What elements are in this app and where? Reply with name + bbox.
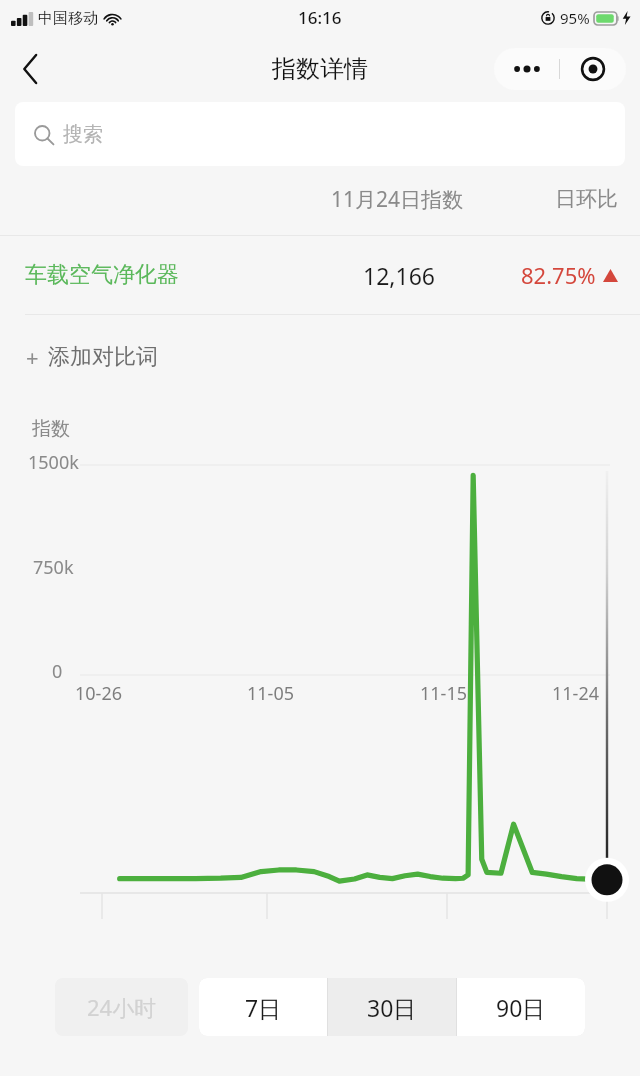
staticText: 车载空气净化器 <box>25 261 308 289</box>
staticText: 11-15 <box>420 681 467 706</box>
button[interactable]: 24小时 <box>55 978 188 1036</box>
staticText: 11-05 <box>247 681 294 706</box>
button[interactable]: 7日 <box>199 978 327 1036</box>
staticText: 11月24日指数 <box>302 185 492 214</box>
staticText: 指数详情 <box>272 54 368 84</box>
staticText: 82.75% <box>521 260 596 290</box>
staticText: 0 <box>52 659 63 684</box>
button[interactable]: 30日 <box>328 978 456 1036</box>
button[interactable]: 车载空气净化器 <box>0 236 640 314</box>
staticText: 添加对比词 <box>48 343 158 371</box>
staticText: 30日 <box>367 992 417 1023</box>
staticText: 24小时 <box>87 992 157 1022</box>
staticText: + <box>26 342 39 372</box>
staticText: 搜索 <box>63 122 103 147</box>
staticText: 750k <box>33 555 74 580</box>
button[interactable]: + <box>0 315 640 399</box>
staticText: 日环比 <box>492 186 618 212</box>
staticText: 7日 <box>245 992 282 1023</box>
button[interactable]: 搜索 <box>15 102 625 166</box>
staticText: 10-26 <box>75 681 122 706</box>
staticText: 11-24 <box>552 681 599 706</box>
staticText: 12,166 <box>308 260 490 291</box>
staticText: 中国移动 <box>38 9 98 28</box>
button[interactable]: More <box>494 48 559 90</box>
button[interactable]: 90日 <box>457 978 585 1036</box>
staticText: 95% <box>560 8 590 28</box>
staticText: 90日 <box>496 992 546 1023</box>
button[interactable]: Target <box>560 48 626 90</box>
staticText: 指数 <box>32 417 70 441</box>
staticText: 16:16 <box>298 6 342 29</box>
staticText: 1500k <box>28 450 79 475</box>
button[interactable]: Back <box>6 44 56 94</box>
